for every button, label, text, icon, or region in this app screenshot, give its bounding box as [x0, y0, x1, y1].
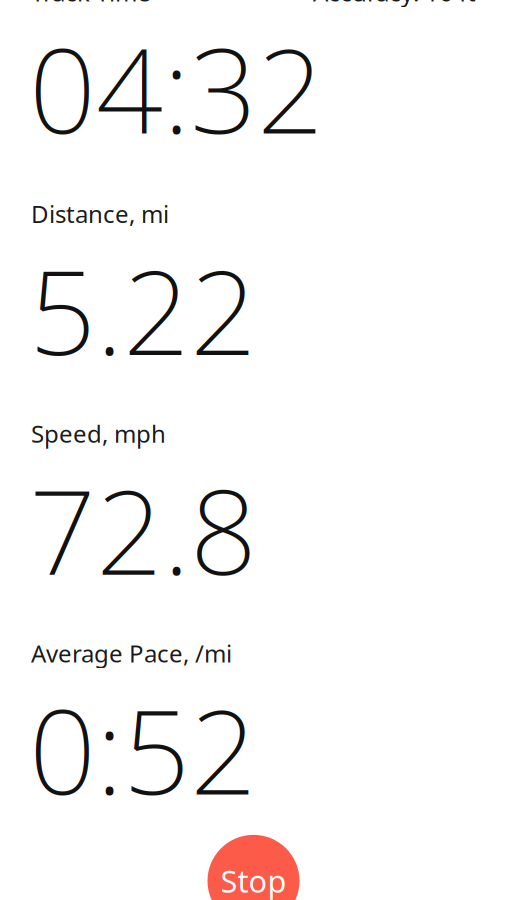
staticText: Accuracy: 16 ft	[313, 0, 476, 8]
staticText: Speed, mph	[31, 417, 166, 449]
staticText: 04:32	[29, 10, 324, 166]
staticText: Stop	[220, 860, 286, 900]
staticText: 72.8	[29, 451, 257, 607]
staticText: Average Pace, /mi	[31, 637, 232, 669]
staticText: Track Time	[31, 0, 151, 8]
staticText: 0:52	[29, 671, 257, 827]
staticText: Distance, mi	[31, 198, 169, 230]
staticText: 5.22	[29, 232, 257, 387]
button[interactable]: Stop	[207, 835, 299, 900]
